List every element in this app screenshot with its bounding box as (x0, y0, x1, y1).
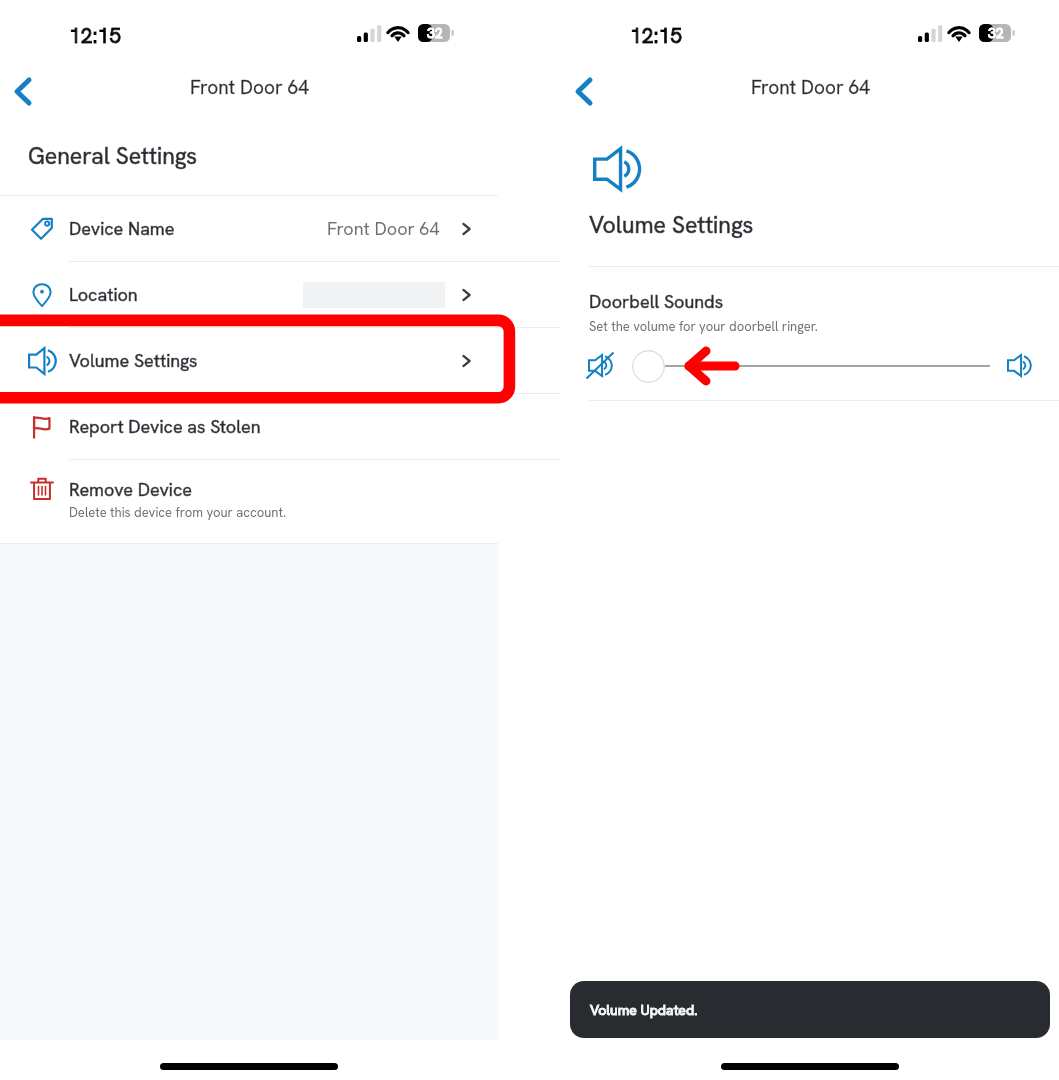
button[interactable]: Volume Updated. (570, 981, 1050, 1038)
staticText: Front Door 64 (751, 75, 870, 100)
staticText: Front Door 64 (190, 75, 309, 100)
staticText: 32 (427, 24, 443, 42)
staticText: Front Door 64 (190, 75, 309, 100)
staticText: 12:15 (69, 22, 122, 49)
staticText: 12:15 (630, 22, 683, 49)
staticText: 32 (988, 24, 1004, 42)
staticText: Report Device as Stolen (69, 415, 261, 438)
staticText: Front Door 64 (751, 75, 870, 100)
staticText: Doorbell Sounds (589, 290, 724, 313)
staticText: Location (69, 283, 138, 306)
staticText: Remove Device (69, 478, 192, 501)
staticText: Device Name (69, 217, 175, 240)
button[interactable]: Remove Device (0, 460, 498, 543)
staticText: Volume Settings (69, 349, 198, 372)
button[interactable]: Mute (588, 354, 612, 377)
staticText: 32 (427, 24, 443, 42)
staticText: Volume Updated. (590, 1001, 698, 1019)
staticText: 32 (988, 24, 1004, 42)
button[interactable]: Volume slider (632, 350, 665, 383)
staticText: Delete this device from your account. (69, 504, 287, 521)
staticText: Set the volume for your doorbell ringer. (589, 318, 818, 335)
staticText: Report Device as Stolen (69, 415, 261, 438)
staticText: 12:15 (630, 22, 683, 49)
staticText: Front Door 64 (327, 217, 440, 240)
button[interactable]: Location (0, 262, 498, 328)
staticText: Device Name (69, 217, 175, 240)
staticText: Volume Settings (69, 349, 198, 372)
button[interactable]: Report Device as Stolen (0, 394, 498, 460)
button[interactable]: Max volume (1007, 354, 1031, 377)
staticText: Location (69, 283, 138, 306)
staticText: Volume Settings (589, 210, 754, 240)
staticText: General Settings (28, 141, 198, 171)
button[interactable]: Back (0, 63, 46, 109)
staticText: 12:15 (69, 22, 122, 49)
staticText: Remove Device (69, 478, 192, 501)
staticText: General Settings (28, 141, 198, 171)
staticText: Volume Updated. (590, 1001, 698, 1019)
staticText: Volume Settings (589, 210, 754, 240)
staticText: Doorbell Sounds (589, 290, 724, 313)
button[interactable]: Volume Settings (0, 328, 498, 394)
button[interactable]: Back (561, 63, 607, 109)
button[interactable]: Device Name (0, 196, 498, 262)
